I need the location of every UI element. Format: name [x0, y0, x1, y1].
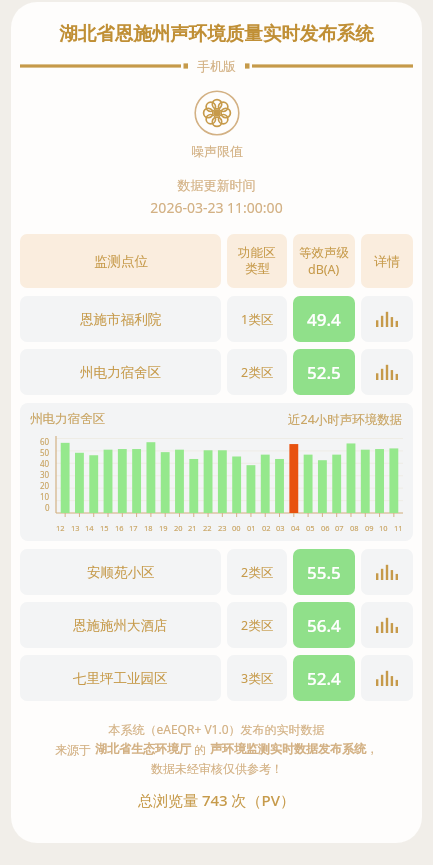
staticText: 恩施市福利院 [80, 311, 161, 328]
staticText: 05 [306, 523, 315, 533]
staticText: 恩施施州大酒店 [73, 617, 168, 634]
staticText: 20 [174, 523, 183, 533]
staticText: 12 [56, 523, 65, 533]
staticText: 22 [203, 523, 212, 533]
staticText: 55.5 [307, 561, 341, 584]
staticText: 0 [45, 502, 50, 513]
staticText: 00 [232, 523, 241, 533]
staticText: 功能区 [238, 245, 276, 261]
staticText: 52.4 [307, 667, 341, 690]
staticText: 18 [144, 523, 153, 533]
staticText: 湖北省恩施州声环境质量实时发布系统 [20, 22, 413, 45]
staticText: 13 [71, 523, 80, 533]
staticText: 2类区 [241, 617, 274, 634]
button[interactable]: 查看详情 州电力宿舍区 [361, 349, 413, 395]
button[interactable]: 恩施施州大酒店 [20, 602, 413, 648]
staticText: 60 [40, 436, 50, 447]
staticText: 10 [40, 491, 50, 502]
button[interactable]: 查看详情 安顺苑小区 [361, 549, 413, 595]
staticText: 40 [40, 458, 50, 469]
staticText: 手机版 [197, 58, 236, 74]
staticText: 08 [350, 523, 359, 533]
staticText: 11 [394, 523, 403, 533]
button[interactable]: 恩施市福利院 [20, 296, 413, 342]
staticText: 总浏览量 743 次（PV） [138, 790, 295, 810]
staticText: 30 [40, 469, 50, 480]
staticText: 14 [85, 523, 94, 533]
staticText: 21 [188, 523, 197, 533]
staticText: 20 [40, 480, 50, 491]
staticText: 17 [129, 523, 138, 533]
staticText: 监测点位 [94, 253, 148, 270]
button[interactable]: 查看详情 七里坪工业园区 [361, 655, 413, 701]
staticText: 噪声限值 [191, 143, 243, 159]
staticText: 3类区 [241, 670, 274, 687]
staticText: 15 [100, 523, 109, 533]
staticText: 10 [379, 523, 388, 533]
button[interactable]: 七里坪工业园区 [20, 655, 413, 701]
staticText: 数据未经审核仅供参考！ [151, 761, 283, 776]
staticText: 2类区 [241, 364, 274, 381]
staticText: 州电力宿舍区 [30, 411, 105, 427]
staticText: 2类区 [241, 564, 274, 581]
staticText: 03 [276, 523, 285, 533]
staticText: 州电力宿舍区 [80, 364, 161, 381]
staticText: 01 [247, 523, 256, 533]
button[interactable]: 查看详情 恩施施州大酒店 [361, 602, 413, 648]
staticText: 来源于 [55, 741, 95, 757]
staticText: 类型 [245, 261, 270, 277]
staticText: 23 [218, 523, 227, 533]
staticText: 详情 [374, 253, 400, 269]
button[interactable]: 安顺苑小区 [20, 549, 413, 595]
staticText: 湖北省生态环境厅 [95, 741, 191, 756]
staticText: 2026-03-23 11:00:00 [20, 198, 413, 217]
staticText: 04 [291, 523, 300, 533]
staticText: 本系统（eAEQR+ V1.0）发布的实时数据 [108, 721, 325, 737]
staticText: 50 [40, 447, 50, 458]
staticText: 七里坪工业园区 [73, 670, 168, 687]
staticText: 56.4 [307, 614, 341, 637]
staticText: 09 [365, 523, 374, 533]
staticText: 52.5 [307, 361, 341, 384]
staticText: 1类区 [241, 311, 274, 328]
staticText: 06 [321, 523, 330, 533]
staticText: 近24小时声环境数据 [288, 411, 403, 428]
staticText: 安顺苑小区 [87, 564, 155, 581]
staticText: dB(A) [308, 261, 340, 278]
staticText: 49.4 [307, 308, 341, 331]
staticText: 16 [115, 523, 124, 533]
button[interactable]: 查看详情 恩施市福利院 [361, 296, 413, 342]
staticText: 声环境监测实时数据发布系统 [210, 741, 366, 756]
staticText: 等效声级 [299, 245, 349, 261]
staticText: 数据更新时间 [20, 177, 413, 193]
staticText: 的 [191, 741, 210, 757]
button[interactable]: 州电力宿舍区 [20, 349, 413, 395]
staticText: ， [366, 741, 378, 756]
staticText: 19 [159, 523, 168, 533]
staticText: 02 [262, 523, 271, 533]
staticText: 07 [335, 523, 344, 533]
